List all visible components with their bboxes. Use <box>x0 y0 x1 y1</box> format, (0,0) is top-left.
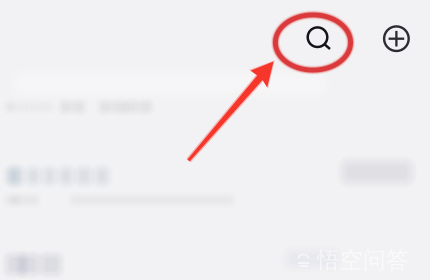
staticText: 悟空问答 <box>317 246 409 274</box>
button[interactable]: Search <box>294 16 338 60</box>
button[interactable]: Add <box>374 16 418 60</box>
